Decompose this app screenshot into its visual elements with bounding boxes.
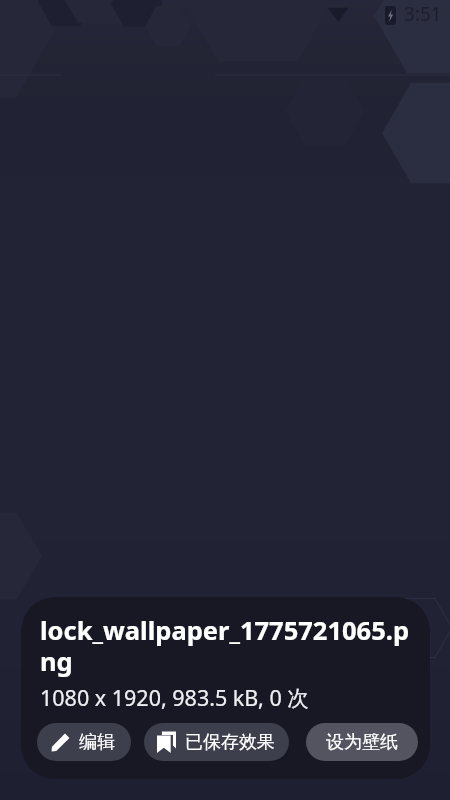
other: Wi-Fi (327, 7, 349, 22)
staticText: 1080 x 1920, 983.5 kB, 0 次 (40, 683, 309, 712)
staticText: 设为壁纸 (326, 731, 398, 754)
button[interactable]: 设为壁纸 (306, 723, 418, 761)
button[interactable]: 编辑 (37, 723, 131, 761)
staticText: lock_wallpaper_1775721065.png (40, 613, 415, 678)
button[interactable]: 已保存效果 (144, 723, 289, 761)
staticText: 编辑 (79, 731, 115, 754)
other: Battery charging (385, 6, 396, 25)
staticText: 已保存效果 (185, 731, 275, 754)
staticText: 3:51 (404, 1, 442, 27)
